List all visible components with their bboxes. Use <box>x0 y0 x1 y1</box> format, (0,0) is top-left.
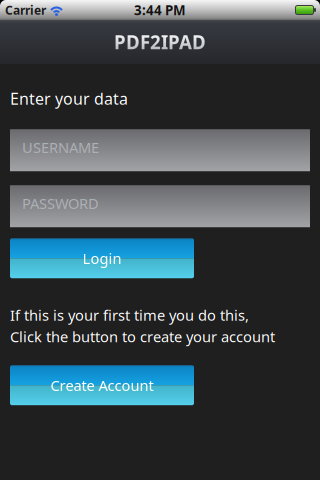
button[interactable]: Login <box>10 238 194 278</box>
staticText: PASSWORD <box>22 193 99 213</box>
staticText: Login <box>82 248 121 268</box>
staticText: 3:44 PM <box>134 1 186 19</box>
staticText: Enter your data <box>10 88 128 109</box>
staticText: Create Account <box>50 375 153 395</box>
staticText: USERNAME <box>22 137 99 157</box>
button[interactable]: PASSWORD <box>10 185 310 227</box>
button[interactable]: USERNAME <box>10 129 310 171</box>
staticText: Click the button to create your account <box>10 327 275 346</box>
staticText: Carrier <box>5 2 46 18</box>
staticText: If this is your first time you do this, <box>10 305 249 325</box>
button[interactable]: Create Account <box>10 365 194 405</box>
